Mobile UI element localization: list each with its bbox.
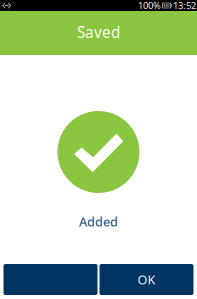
staticText: Added: [79, 213, 118, 230]
button[interactable]: Cancel: [3, 264, 97, 295]
staticText: 100%: [138, 0, 161, 12]
staticText: 13:52: [173, 0, 196, 12]
staticText: Saved: [77, 22, 120, 42]
staticText: OK: [137, 271, 155, 288]
button[interactable]: OK: [99, 264, 193, 295]
